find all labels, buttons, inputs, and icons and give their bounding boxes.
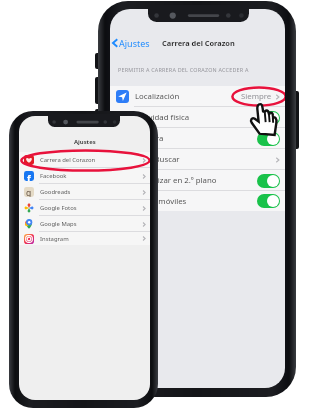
staticText: Google Fotos — [40, 204, 77, 212]
button[interactable]: Siri y Buscar — [110, 149, 285, 170]
button[interactable]: Datos móviles — [110, 191, 285, 211]
other: Tap pointer — [249, 103, 281, 136]
staticText: Actualizar en 2.º plano — [135, 175, 217, 186]
button[interactable]: g — [19, 184, 150, 200]
button[interactable]: Google Fotos — [19, 200, 150, 216]
button[interactable]: Toggle on — [257, 194, 280, 208]
staticText: Siri y Buscar — [135, 154, 180, 165]
button[interactable]: Instagram — [19, 232, 150, 245]
staticText: g — [26, 187, 32, 197]
staticText: Datos móviles — [135, 196, 187, 207]
button[interactable]: Actualizar en 2.º plano — [110, 170, 285, 191]
staticText: Carrera del Corazon — [40, 156, 96, 164]
staticText: Google Maps — [40, 220, 77, 228]
button[interactable]: Carrera del Corazon — [19, 152, 150, 168]
staticText: Instagram — [40, 235, 69, 243]
button[interactable]: Cámara — [110, 128, 285, 149]
staticText: f — [27, 172, 31, 181]
staticText: Facebook — [40, 172, 67, 180]
button[interactable]: Toggle on — [257, 174, 280, 188]
staticText: Cámara — [135, 133, 164, 144]
staticText: Localización — [135, 91, 180, 102]
button[interactable]: Google Maps — [19, 216, 150, 232]
staticText: Goodreads — [40, 188, 71, 196]
button[interactable]: Toggle on — [257, 132, 280, 146]
button[interactable]: Actividad física — [110, 107, 285, 128]
staticText: Ajustes — [74, 138, 96, 146]
staticText: Actividad física — [135, 112, 190, 123]
staticText: Siempre — [241, 91, 272, 102]
button[interactable]: Localización — [110, 86, 285, 107]
button[interactable]: Ajustes — [112, 37, 150, 49]
button[interactable]: Toggle on — [257, 111, 280, 125]
staticText: PERMITIR A CARRERA DEL CORAZON ACCEDER A — [118, 66, 249, 73]
button[interactable]: f — [19, 168, 150, 184]
staticText: Carrera del Corazon — [162, 38, 235, 48]
staticText: Ajustes — [119, 37, 150, 49]
